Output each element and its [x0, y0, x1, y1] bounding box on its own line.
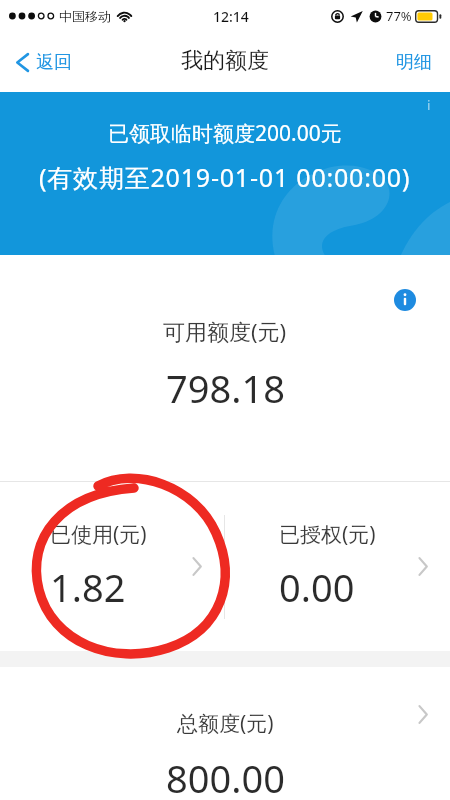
button[interactable]: Info: [418, 94, 440, 116]
staticText: i: [427, 96, 431, 114]
button[interactable]: Info: [394, 289, 416, 311]
staticText: (有效期至2019-01-01 00:00:00): [39, 160, 411, 194]
staticText: 800.00: [166, 752, 285, 800]
button[interactable]: 总额度(元): [0, 667, 450, 800]
staticText: 返回: [36, 51, 72, 74]
staticText: 已授权(元): [279, 520, 376, 549]
staticText: 1.82: [50, 561, 126, 613]
staticText: 总额度(元): [177, 709, 274, 738]
staticText: 0.00: [279, 561, 355, 613]
button[interactable]: 返回: [16, 43, 80, 82]
button[interactable]: 已使用(元): [0, 482, 224, 651]
staticText: 已领取临时额度200.00元: [108, 119, 342, 148]
button[interactable]: 明细: [392, 43, 436, 82]
staticText: 77%: [386, 7, 412, 25]
staticText: 12:14: [213, 7, 249, 26]
staticText: 可用额度(元): [163, 316, 287, 346]
staticText: 明细: [396, 51, 432, 74]
staticText: 中国移动: [59, 8, 111, 24]
button[interactable]: 已授权(元): [225, 482, 450, 651]
staticText: 已使用(元): [50, 520, 147, 549]
staticText: 798.18: [166, 362, 285, 414]
staticText: 我的额度: [181, 47, 269, 75]
